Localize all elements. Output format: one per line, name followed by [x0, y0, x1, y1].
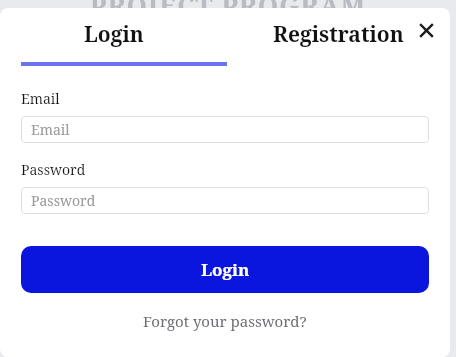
button[interactable]: Registration: [227, 8, 450, 62]
button[interactable]: Password: [21, 187, 429, 214]
staticText: Forgot your password?: [143, 311, 307, 331]
staticText: Login: [84, 20, 144, 49]
button[interactable]: Email: [21, 116, 429, 143]
staticText: Password: [21, 160, 86, 179]
staticText: Email: [31, 120, 70, 139]
staticText: Login: [201, 258, 250, 281]
staticText: Registration: [273, 20, 404, 49]
staticText: Email: [21, 89, 60, 108]
staticText: PROJECT PROGRAM: [0, 0, 456, 22]
button[interactable]: Close: [412, 16, 440, 44]
button[interactable]: Login: [0, 8, 227, 62]
button[interactable]: Forgot your password?: [0, 308, 450, 334]
staticText: Password: [31, 191, 96, 210]
button[interactable]: Login: [21, 246, 429, 293]
